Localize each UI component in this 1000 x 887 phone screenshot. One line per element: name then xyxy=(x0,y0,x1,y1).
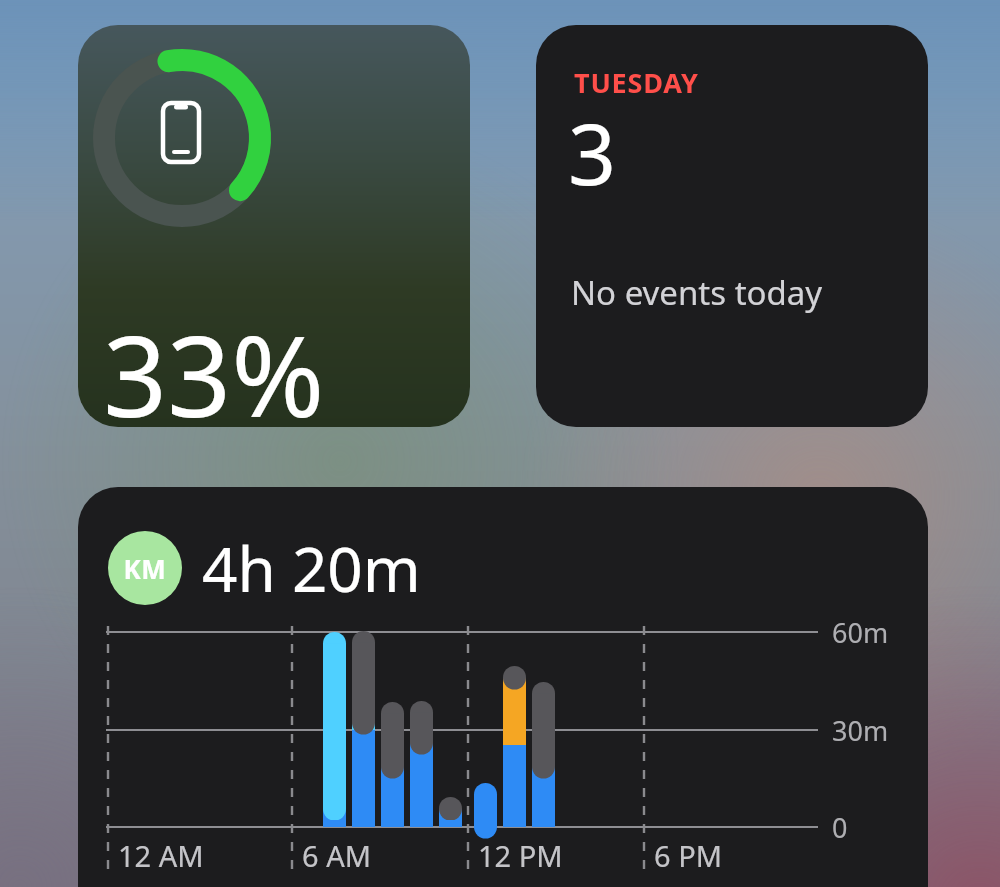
button[interactable]: Screen Time, 4 hours 20 minutes xyxy=(78,487,928,887)
button[interactable]: Calendar, Tuesday 3, No events today xyxy=(536,25,928,427)
button[interactable]: Battery, 33 percent xyxy=(78,25,470,427)
